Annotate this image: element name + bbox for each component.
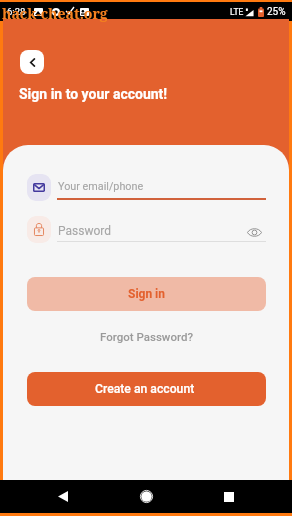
staticText: LTE [230,7,244,17]
button[interactable] [27,215,237,244]
staticText: Sign in [128,287,166,301]
staticText: hack-cheat.org [2,4,108,23]
staticText: 6:28 [7,6,26,17]
staticText: Forgot Password? [100,330,193,343]
button[interactable]: Show password [243,221,265,243]
staticText: Password [58,224,112,238]
button[interactable]: Create an account [27,372,266,406]
button[interactable]: Home [132,480,160,513]
button[interactable] [27,172,266,202]
button[interactable]: Back [49,480,77,513]
staticText: 25% [267,6,286,18]
staticText: Create an account [95,382,198,396]
button[interactable]: Sign in [27,277,266,311]
staticText: Your email/phone [58,180,144,193]
staticText: Sign in to your account! [19,86,168,102]
button[interactable]: Forgot Password? [92,326,200,346]
button[interactable]: Recents [215,480,243,513]
button[interactable]: Back [20,50,44,74]
